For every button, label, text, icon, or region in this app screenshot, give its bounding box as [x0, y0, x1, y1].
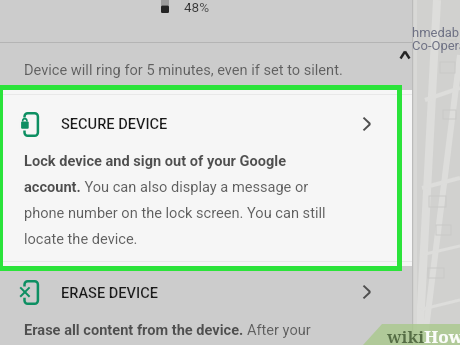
staticText: Lock device and sign out of your Google …: [24, 152, 336, 247]
staticText: wikiHow: [387, 325, 460, 345]
staticText: Device will ring for 5 minutes, even if …: [24, 61, 343, 78]
staticText: hmedaba: [412, 25, 460, 40]
staticText: SECURE DEVICE: [61, 115, 168, 132]
other: Open: [362, 116, 372, 132]
button[interactable]: SECURE DEVICE: [0, 90, 412, 266]
button[interactable]: ERASE DEVICE: [0, 266, 412, 318]
staticText: ERASE DEVICE: [61, 284, 158, 301]
staticText: Erase all content from the device. After…: [24, 321, 311, 338]
button[interactable]: Collapse: [396, 46, 414, 64]
other: Open: [362, 284, 372, 300]
staticText: 48%: [184, 0, 210, 15]
staticText: Co-Opera: [412, 38, 460, 53]
